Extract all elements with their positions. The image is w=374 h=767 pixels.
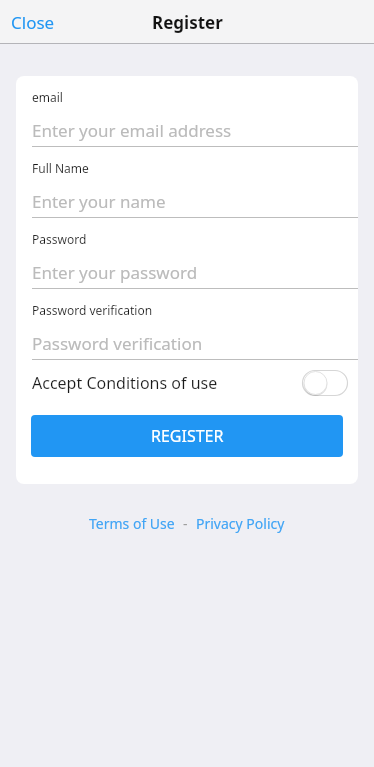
staticText: Enter your name [32, 190, 166, 213]
staticText: Enter your email address [32, 119, 232, 142]
staticText: Register [152, 11, 223, 34]
staticText: Password verification [32, 332, 203, 355]
staticText: Close [11, 11, 55, 34]
button[interactable]: REGISTER [31, 415, 343, 457]
staticText: Password verification [32, 302, 153, 318]
button[interactable]: Full Name [16, 147, 358, 218]
button[interactable]: Terms of Use [87, 512, 177, 535]
button[interactable]: Privacy Policy [194, 512, 287, 535]
button[interactable]: email [16, 76, 358, 147]
staticText: email [32, 89, 63, 105]
button[interactable]: Accept Conditions of use toggle [302, 370, 348, 396]
staticText: Privacy Policy [196, 514, 285, 533]
staticText: Password [32, 231, 87, 247]
button[interactable]: Password verification [16, 289, 358, 360]
staticText: Enter your password [32, 261, 198, 284]
staticText: Full Name [32, 160, 89, 176]
button[interactable]: Password [16, 218, 358, 289]
staticText: - [183, 514, 188, 533]
button[interactable]: Accept Conditions of use [16, 360, 358, 405]
button[interactable]: Close [4, 5, 62, 40]
staticText: Terms of Use [89, 514, 175, 533]
staticText: REGISTER [151, 425, 224, 447]
staticText: Accept Conditions of use [32, 372, 218, 394]
